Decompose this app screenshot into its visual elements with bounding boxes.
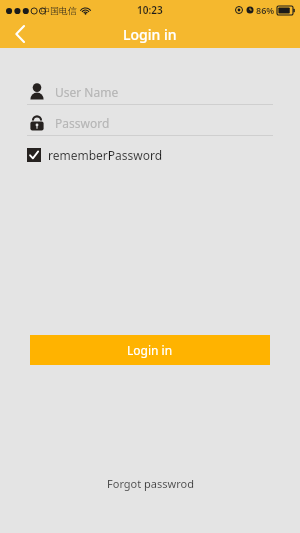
button[interactable]: Back <box>0 20 40 48</box>
button[interactable]: rememberPassword <box>27 145 163 165</box>
button[interactable]: Password <box>27 111 273 135</box>
button[interactable]: User Name <box>27 80 273 104</box>
staticText: 中国电信 <box>41 5 77 16</box>
button[interactable]: Forgot passwrod <box>97 472 204 495</box>
staticText: 10:23 <box>137 3 163 17</box>
staticText: User Name <box>55 84 119 100</box>
staticText: Login in <box>123 25 177 44</box>
button[interactable]: Login in <box>30 335 270 365</box>
staticText: rememberPassword <box>48 147 163 163</box>
staticText: 86% <box>256 4 275 16</box>
staticText: Forgot passwrod <box>107 476 194 491</box>
staticText: Password <box>55 115 110 131</box>
staticText: Login in <box>127 342 173 358</box>
